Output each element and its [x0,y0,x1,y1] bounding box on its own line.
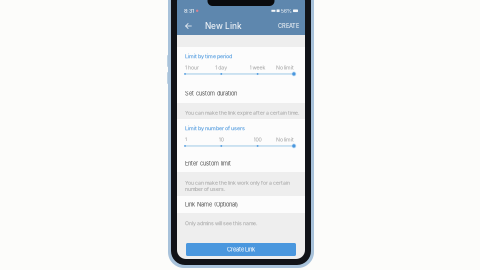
staticText: You can make the link work only for a ce… [185,180,290,192]
staticText: New Link [205,21,242,31]
staticText: No limit [276,64,294,71]
staticText: 56% [281,7,292,14]
staticText: Enter custom limit [185,160,231,167]
button[interactable]: Set custom duration [177,84,305,103]
staticText: 1 [185,136,187,143]
staticText: Link Name (Optional) [185,201,238,208]
staticText: Only admins will see this name. [185,220,257,227]
staticText: 100 [254,136,262,143]
button[interactable]: Back [182,17,195,35]
staticText: Limit by time period [185,53,232,59]
staticText: Create Link [227,246,255,253]
staticText: 10 [219,136,224,143]
staticText: Set custom duration [185,90,237,97]
staticText: You can make the link expire after a cer… [185,110,299,116]
staticText: No limit [276,136,294,143]
button[interactable]: Link Name (Optional) [177,196,305,213]
staticText: 1 hour [185,64,199,71]
staticText: 1 day [215,64,227,71]
staticText: CREATE [278,23,299,29]
staticText: Limit by number of users [185,125,245,131]
staticText: 8:31 [184,7,194,14]
button[interactable]: Create Link [186,243,296,256]
staticText: 1 week [250,64,266,71]
button[interactable]: Enter custom limit [177,155,305,172]
button[interactable]: CREATE [275,17,302,35]
